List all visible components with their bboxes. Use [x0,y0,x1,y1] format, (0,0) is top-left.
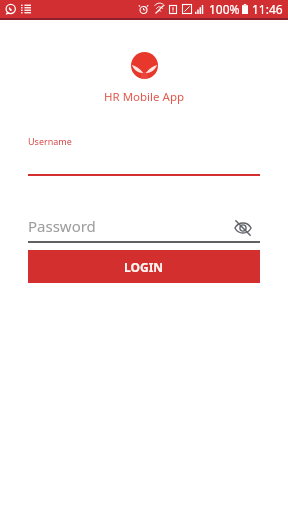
button[interactable]: Password [28,214,260,243]
staticText: HR Mobile App [104,89,185,105]
button[interactable]: Username [28,133,260,176]
staticText: 11:46 [252,1,283,17]
staticText: Username [28,135,72,147]
staticText: LOGIN [124,259,164,275]
staticText: Password [28,216,96,236]
staticText: 100% [209,1,240,17]
button[interactable]: Show password [233,218,253,238]
button[interactable]: LOGIN [28,250,260,283]
